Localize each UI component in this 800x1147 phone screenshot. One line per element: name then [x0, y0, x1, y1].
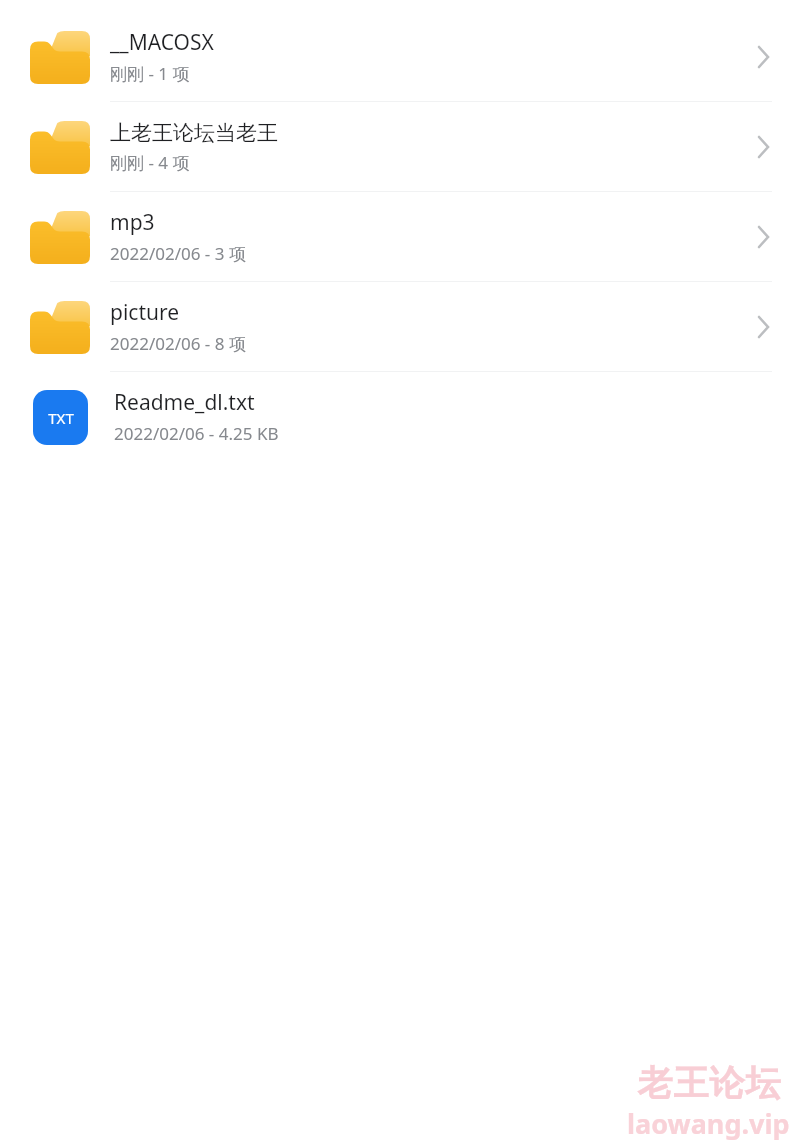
staticText: 刚刚 - 4 项	[110, 151, 190, 174]
button[interactable]: Open picture	[740, 305, 784, 349]
button[interactable]: __MACOSX	[0, 12, 800, 101]
staticText: laowang.vip	[627, 1105, 790, 1142]
button[interactable]: Open 上老王论坛当老王	[740, 125, 784, 169]
button[interactable]: picture	[0, 282, 800, 371]
staticText: 2022/02/06 - 4.25 KB	[114, 422, 279, 445]
staticText: 上老王论坛当老王	[110, 120, 278, 146]
staticText: __MACOSX	[110, 28, 214, 57]
staticText: TXT	[48, 408, 74, 428]
staticText: 刚刚 - 1 项	[110, 62, 190, 85]
button[interactable]: 上老王论坛当老王	[0, 102, 800, 191]
staticText: mp3	[110, 208, 155, 237]
button[interactable]: Open mp3	[740, 215, 784, 259]
staticText: 老王论坛	[637, 1061, 781, 1105]
staticText: Readme_dl.txt	[114, 388, 255, 417]
staticText: 2022/02/06 - 8 项	[110, 332, 246, 355]
button[interactable]: TXT	[0, 372, 800, 461]
staticText: picture	[110, 298, 180, 327]
staticText: 2022/02/06 - 3 项	[110, 242, 246, 265]
button[interactable]: Open __MACOSX	[740, 35, 784, 79]
button[interactable]: mp3	[0, 192, 800, 281]
